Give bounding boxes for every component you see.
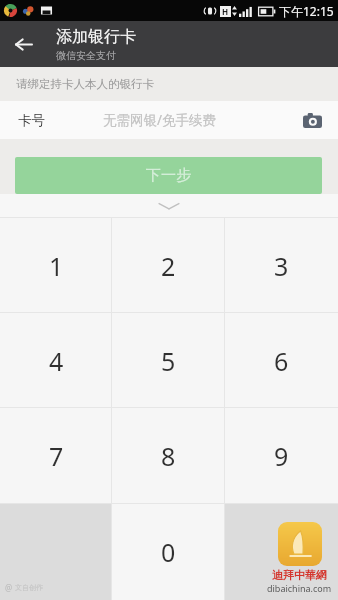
button[interactable]: 0 [112, 504, 225, 600]
staticText: dibaichina.com [267, 582, 332, 594]
staticText: 文自创作 [15, 583, 43, 592]
button[interactable]: 5 [112, 313, 225, 408]
staticText: 0 [161, 535, 176, 569]
button[interactable]: 2 [112, 218, 225, 313]
staticText: 6 [274, 344, 289, 378]
button[interactable]: 4 [0, 313, 112, 408]
button[interactable]: Scan bank card with camera [295, 103, 329, 137]
staticText: 8 [161, 439, 176, 473]
staticText: 下午12:15 [279, 3, 334, 19]
staticText: 5 [161, 344, 176, 378]
staticText: 无需网银/免手续费 [103, 111, 217, 129]
staticText: 1 [49, 249, 64, 283]
staticText: 添加银行卡 [56, 27, 136, 47]
staticText: 4 [49, 344, 64, 378]
button[interactable]: Back [0, 21, 46, 67]
staticText: 3 [274, 249, 289, 283]
staticText: 卡号 [18, 112, 45, 129]
staticText: 微信安全支付 [56, 49, 116, 62]
staticText: 2 [161, 249, 176, 283]
button[interactable]: 3 [225, 218, 338, 313]
staticText: @ [5, 582, 13, 593]
button[interactable]: 卡号 [0, 101, 338, 139]
button[interactable]: Hide keypad [0, 194, 338, 218]
staticText: 9 [274, 439, 289, 473]
button[interactable]: 下一步 [15, 157, 322, 194]
button[interactable]: 6 [225, 313, 338, 408]
button[interactable]: 8 [112, 408, 225, 504]
button[interactable]: 9 [225, 408, 338, 504]
button[interactable]: 7 [0, 408, 112, 504]
staticText: 7 [49, 439, 64, 473]
staticText: H [222, 6, 229, 17]
button[interactable]: 1 [0, 218, 112, 313]
staticText: 请绑定持卡人本人的银行卡 [16, 77, 154, 91]
staticText: 迪拜中華網 [272, 568, 327, 582]
staticText: 下一步 [146, 166, 191, 185]
